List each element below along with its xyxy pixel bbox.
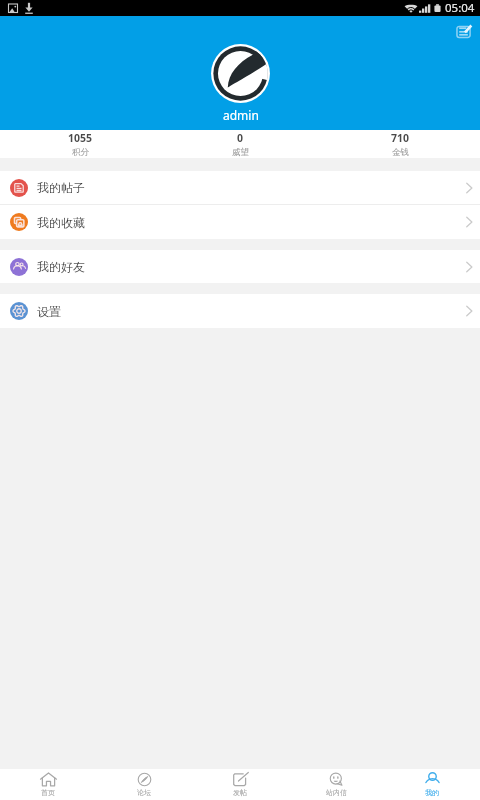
staticText: 论坛 xyxy=(137,788,151,797)
button[interactable]: 我的 xyxy=(384,769,480,800)
staticText: 首页 xyxy=(41,788,55,797)
staticText: 设置 xyxy=(37,304,61,319)
staticText: 我的 xyxy=(425,788,439,797)
staticText: 我的帖子 xyxy=(37,180,85,195)
staticText: 0 xyxy=(237,131,244,145)
staticText: 站内信 xyxy=(326,788,347,797)
button[interactable]: 1055 xyxy=(0,130,160,158)
button[interactable]: 我的好友 xyxy=(0,250,480,283)
button[interactable]: 首页 xyxy=(0,769,96,800)
staticText: 金钱 xyxy=(392,147,409,158)
button[interactable]: Edit profile xyxy=(451,18,477,44)
staticText: 威望 xyxy=(232,147,249,158)
button[interactable]: 论坛 xyxy=(96,769,192,800)
button[interactable]: 0 xyxy=(160,130,320,158)
button[interactable]: 站内信 xyxy=(288,769,384,800)
button[interactable]: 我的收藏 xyxy=(0,205,480,239)
button[interactable]: 设置 xyxy=(0,294,480,328)
button[interactable]: 710 xyxy=(320,130,480,158)
button[interactable]: Avatar xyxy=(211,44,270,103)
staticText: admin xyxy=(223,107,259,123)
staticText: 我的收藏 xyxy=(37,215,85,230)
staticText: 1055 xyxy=(68,131,93,145)
staticText: 05:04 xyxy=(445,0,475,16)
button[interactable]: 发帖 xyxy=(192,769,288,800)
staticText: 我的好友 xyxy=(37,259,85,274)
staticText: 发帖 xyxy=(233,788,247,797)
staticText: 710 xyxy=(391,131,410,145)
staticText: 积分 xyxy=(72,147,89,158)
button[interactable]: 我的帖子 xyxy=(0,171,480,204)
